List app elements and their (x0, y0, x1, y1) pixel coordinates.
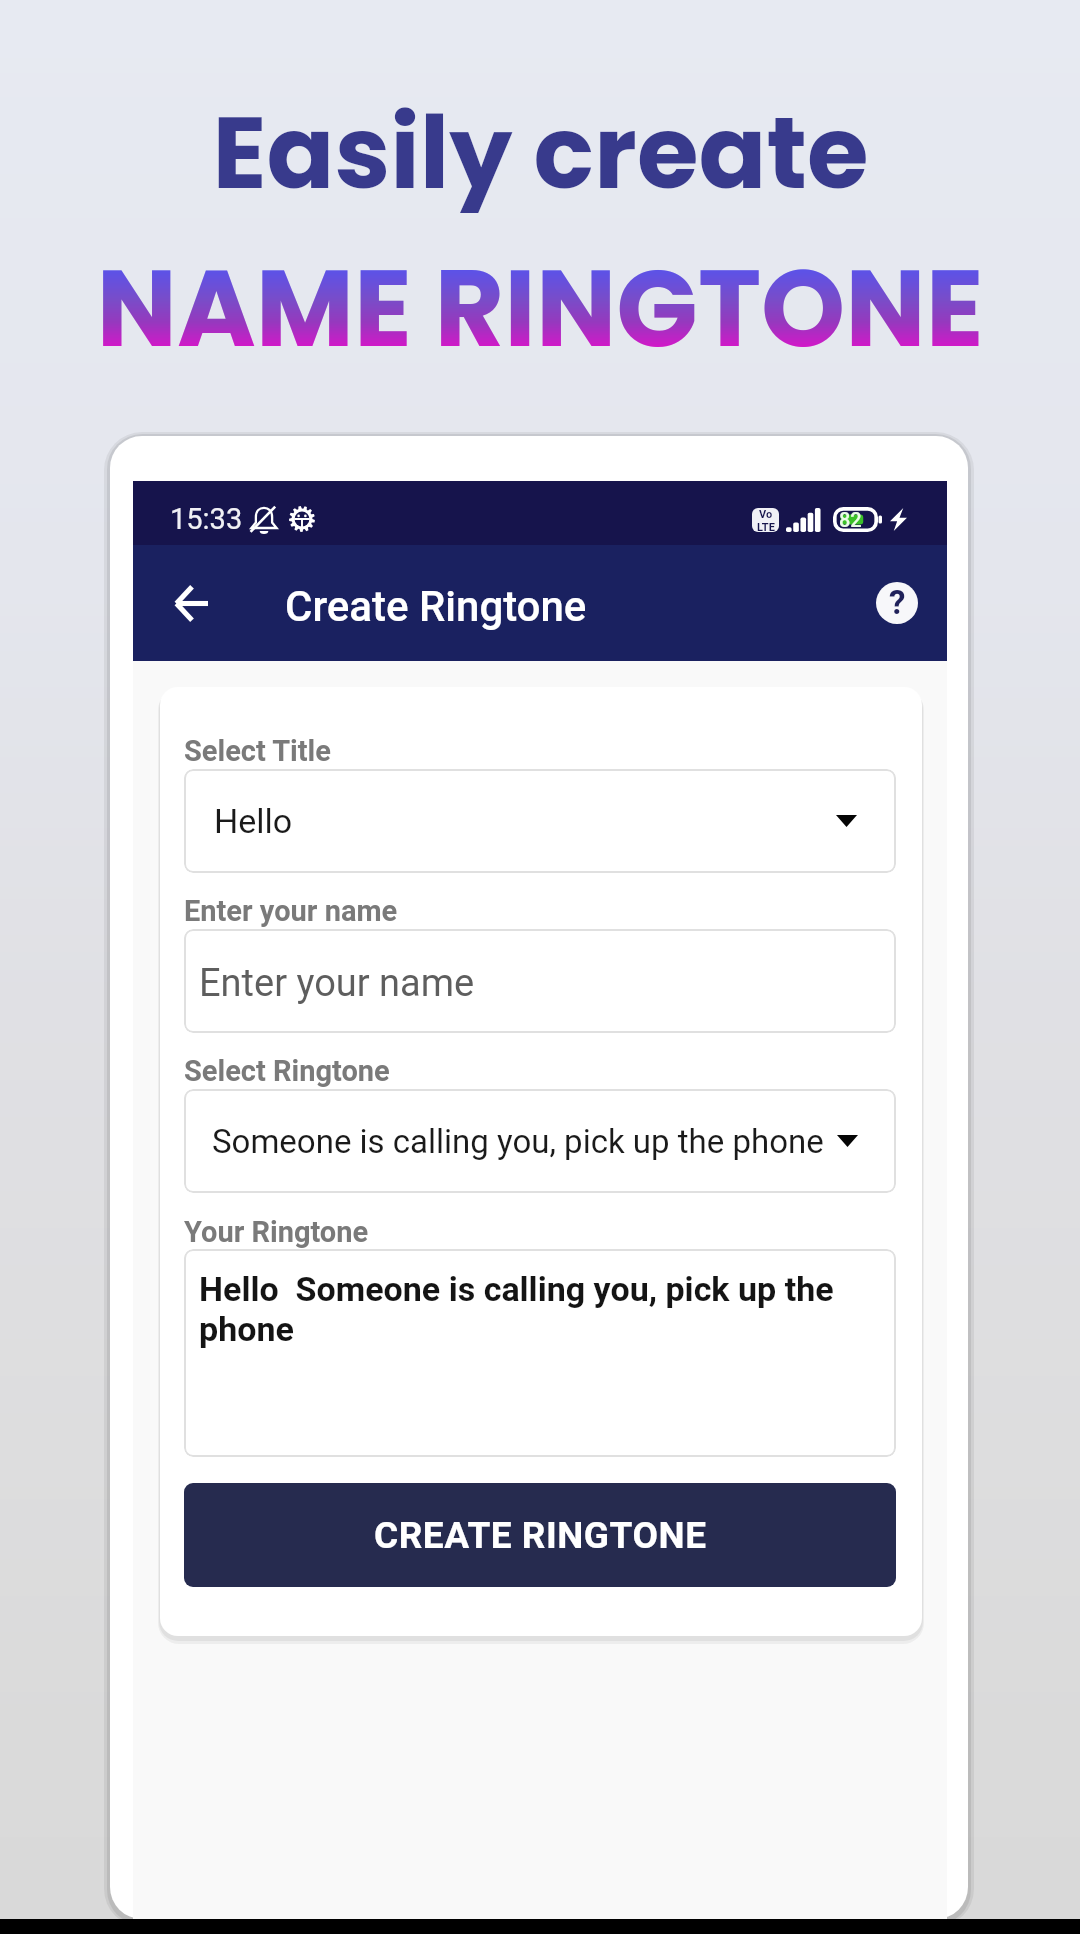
button[interactable]: Enter your name (184, 929, 896, 1033)
button[interactable]: Someone is calling you, pick up the phon… (184, 1089, 896, 1193)
staticText: CREATE RINGTONE (374, 1514, 707, 1557)
button[interactable]: Hello Someone is calling you, pick up th… (184, 1249, 896, 1457)
button[interactable]: CREATE RINGTONE (184, 1483, 896, 1587)
staticText: Select Title (184, 734, 331, 768)
staticText: Easily create (212, 83, 869, 213)
staticText: Vo (759, 508, 773, 521)
staticText: Hello (214, 801, 293, 841)
staticText: Your Ringtone (184, 1215, 369, 1249)
staticText: Enter your name (199, 961, 475, 1006)
staticText: 82 (839, 508, 862, 531)
staticText: Create Ringtone (285, 582, 587, 631)
staticText: 15:33 (170, 502, 243, 536)
staticText: Someone is calling you, pick up the phon… (212, 1122, 824, 1161)
button[interactable]: Back (157, 569, 225, 637)
staticText: ? (889, 583, 906, 622)
button[interactable]: Hello (184, 769, 896, 873)
staticText: NAME RINGTONE (96, 234, 984, 354)
staticText: LTE (757, 521, 775, 532)
staticText: Hello Someone is calling you, pick up th… (199, 1269, 871, 1350)
staticText: Select Ringtone (184, 1054, 390, 1088)
staticText: Enter your name (184, 894, 398, 928)
button[interactable]: Help (863, 569, 931, 637)
